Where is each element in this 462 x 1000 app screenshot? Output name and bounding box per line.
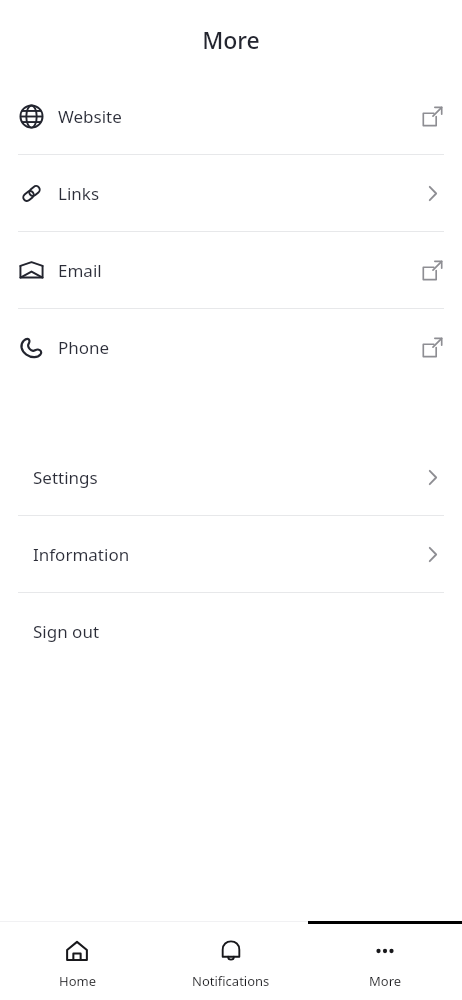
button[interactable]: Sign out [0, 593, 462, 669]
staticText: Links [58, 182, 100, 205]
staticText: Phone [58, 336, 110, 359]
staticText: Sign out [33, 620, 100, 643]
button[interactable]: Information [0, 516, 462, 592]
staticText: Settings [33, 466, 98, 489]
button[interactable]: Website [0, 78, 462, 154]
button[interactable]: Phone [0, 309, 462, 385]
staticText: More [202, 24, 260, 55]
staticText: Information [33, 543, 130, 566]
staticText: Home [59, 972, 96, 990]
button[interactable]: Home [0, 921, 154, 1000]
staticText: Email [58, 259, 102, 282]
staticText: Website [58, 105, 122, 128]
button[interactable]: More [308, 921, 462, 1000]
staticText: More [369, 972, 402, 990]
button[interactable]: Notifications [154, 921, 308, 1000]
button[interactable]: Settings [0, 439, 462, 515]
staticText: Notifications [192, 972, 270, 990]
button[interactable]: Links [0, 155, 462, 231]
button[interactable]: Email [0, 232, 462, 308]
